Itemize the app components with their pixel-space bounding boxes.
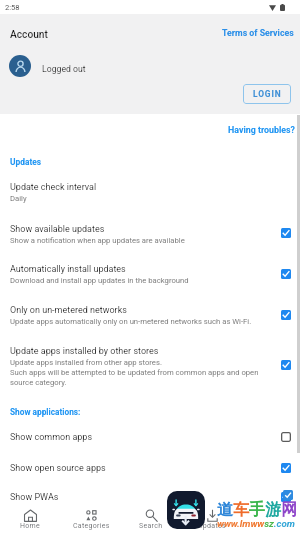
- staticText: Update check interval: [10, 182, 97, 193]
- button[interactable]: Search: [121, 505, 181, 532]
- button[interactable]: Checked option: [271, 259, 300, 289]
- staticText: Such apps will be attempted to be update…: [10, 368, 259, 377]
- staticText: Update apps installed by other stores: [10, 346, 159, 357]
- button[interactable]: Home: [0, 505, 60, 532]
- staticText: Update apps installed from other app sto…: [10, 358, 162, 367]
- staticText: source category.: [10, 378, 67, 387]
- button[interactable]: Categories: [61, 505, 121, 532]
- button[interactable]: Checked option: [271, 300, 300, 330]
- button[interactable]: LOGIN: [243, 84, 291, 104]
- staticText: Show common apps: [10, 432, 93, 443]
- staticText: Show applications:: [10, 407, 81, 417]
- button[interactable]: Unchecked option: [271, 422, 300, 452]
- button[interactable]: Show PWAs: [0, 486, 300, 503]
- button[interactable]: Checked option: [271, 482, 300, 512]
- staticText: www.lmwwsz.com: [217, 518, 295, 529]
- button[interactable]: Checked option: [271, 218, 300, 248]
- button[interactable]: Show available updates: [0, 218, 300, 246]
- button[interactable]: Updates: [182, 505, 242, 532]
- staticText: Show open source apps: [10, 463, 106, 474]
- staticText: LOGIN: [253, 89, 282, 99]
- staticText: Logged out: [42, 64, 86, 74]
- button[interactable]: Update check interval: [0, 176, 300, 204]
- staticText: Only on un-metered networks: [10, 305, 127, 316]
- button[interactable]: Terms of Services: [219, 25, 297, 41]
- staticText: 道车手游网: [217, 500, 297, 520]
- staticText: Account: [10, 29, 48, 41]
- staticText: Download and install app updates in the …: [10, 276, 189, 285]
- button[interactable]: Show open source apps: [0, 457, 300, 474]
- staticText: 2:58: [5, 3, 20, 12]
- staticText: Show PWAs: [10, 492, 59, 503]
- staticText: Categories: [73, 522, 110, 530]
- button[interactable]: Update apps installed by other stores: [0, 340, 300, 390]
- staticText: Home: [20, 522, 41, 530]
- staticText: Daily: [10, 194, 27, 203]
- staticText: Updates: [198, 522, 226, 530]
- staticText: Show available updates: [10, 224, 105, 235]
- staticText: Terms of Services: [222, 28, 294, 38]
- button[interactable]: Checked option: [271, 350, 300, 380]
- staticText: Automatically install updates: [10, 264, 126, 275]
- staticText: Show a notification when app updates are…: [10, 236, 185, 245]
- button[interactable]: Only on un-metered networks: [0, 299, 300, 327]
- staticText: Having troubles?: [228, 125, 296, 135]
- button[interactable]: Show common apps: [0, 426, 300, 443]
- staticText: Update apps automatically only on un-met…: [10, 317, 252, 326]
- staticText: Search: [139, 522, 163, 530]
- button[interactable]: Automatically install updates: [0, 258, 300, 286]
- staticText: Updates: [10, 157, 42, 167]
- button[interactable]: Checked option: [271, 453, 300, 483]
- button[interactable]: Having troubles?: [225, 122, 299, 138]
